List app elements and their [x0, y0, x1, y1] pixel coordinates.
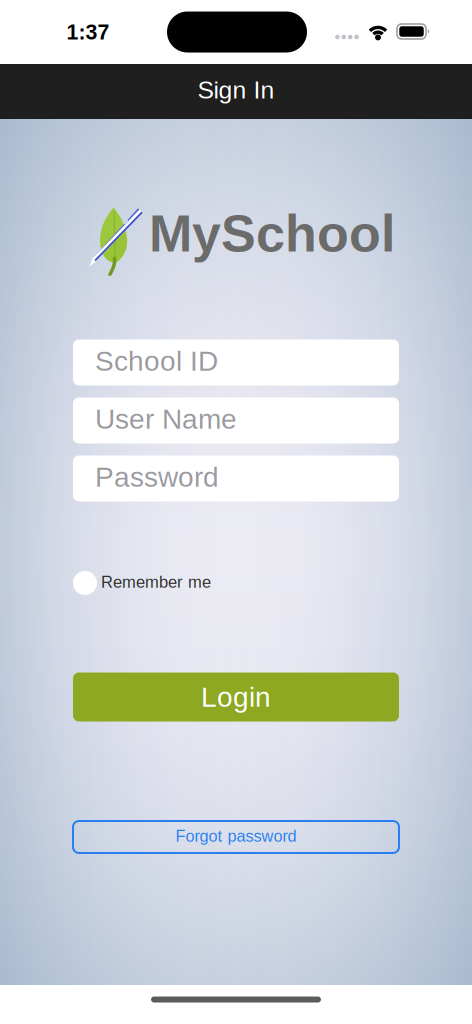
button[interactable]: Login: [73, 672, 399, 721]
button[interactable]: School ID: [73, 339, 399, 385]
staticText: MySchool: [149, 204, 395, 263]
staticText: School ID: [95, 345, 218, 377]
staticText: Forgot password: [175, 827, 296, 845]
button[interactable]: Password: [73, 455, 399, 501]
staticText: Password: [95, 461, 219, 493]
staticText: Sign In: [197, 76, 274, 104]
staticText: Login: [201, 681, 271, 713]
staticText: Remember me: [101, 573, 211, 591]
button[interactable]: User Name: [73, 397, 399, 443]
staticText: User Name: [95, 403, 237, 435]
button[interactable]: Forgot password: [73, 821, 399, 853]
staticText: 1:37: [66, 20, 109, 44]
button[interactable]: Remember me: [73, 566, 399, 600]
